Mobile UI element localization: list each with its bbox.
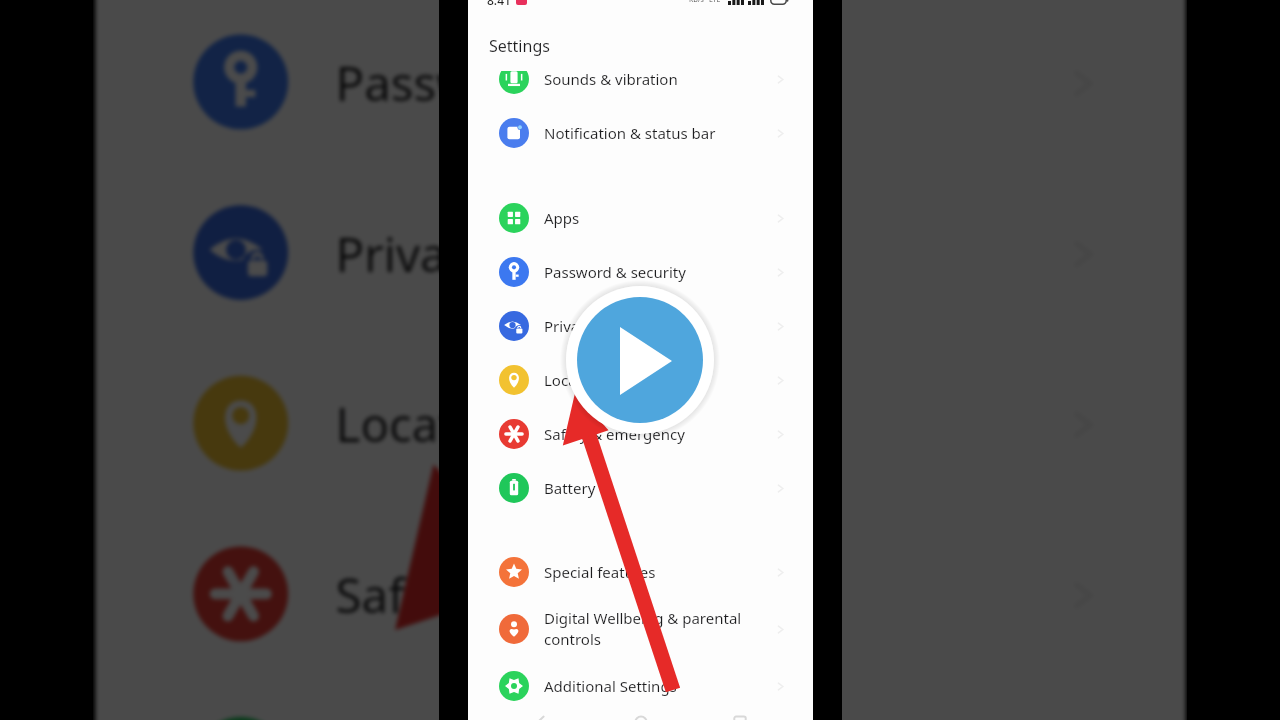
- button[interactable]: Location: [95, 338, 1186, 508]
- staticText: Location: [336, 392, 1062, 455]
- button[interactable]: Privacy: [468, 299, 813, 353]
- button[interactable]: Battery: [95, 679, 1186, 720]
- button[interactable]: Safety & emergency: [95, 508, 1186, 679]
- staticText: Notification & status bar: [544, 123, 774, 143]
- staticText: Location: [544, 370, 774, 390]
- button[interactable]: Back: [530, 710, 552, 720]
- button[interactable]: Battery: [468, 461, 813, 515]
- button[interactable]: Password & security: [95, 0, 1186, 167]
- button[interactable]: Apps: [468, 191, 813, 245]
- button[interactable]: Safety & emergency: [468, 407, 813, 461]
- staticText: Additional Settings: [544, 676, 774, 696]
- button[interactable]: Home: [630, 710, 652, 720]
- button[interactable]: Notification & status bar: [468, 106, 813, 160]
- staticText: Password & security: [544, 262, 774, 282]
- staticText: LTE: [709, 0, 721, 5]
- staticText: Privacy: [336, 221, 1062, 284]
- staticText: Safety & emergency: [544, 424, 774, 444]
- staticText: Password & security: [336, 50, 1062, 113]
- button[interactable]: Recents: [729, 710, 751, 720]
- staticText: Battery: [544, 478, 774, 498]
- button[interactable]: Privacy: [95, 167, 1186, 338]
- button[interactable]: Additional Settings: [468, 659, 813, 713]
- button[interactable]: Location: [468, 353, 813, 407]
- staticText: Digital Wellbeing & parental controls: [544, 608, 774, 650]
- button[interactable]: Digital Wellbeing & parental controls: [468, 599, 813, 659]
- staticText: Privacy: [544, 316, 774, 336]
- staticText: Settings: [489, 35, 550, 57]
- button[interactable]: Sounds & vibration: [468, 52, 813, 106]
- staticText: Special features: [544, 562, 774, 582]
- staticText: KB/s: [689, 0, 704, 5]
- button[interactable]: Password & security: [468, 245, 813, 299]
- button[interactable]: Play video: [560, 280, 720, 440]
- staticText: Apps: [544, 208, 774, 228]
- button[interactable]: Special features: [468, 545, 813, 599]
- staticText: Sounds & vibration: [544, 69, 774, 89]
- staticText: Safety & emergency: [336, 562, 1062, 625]
- staticText: 8:41: [487, 0, 511, 6]
